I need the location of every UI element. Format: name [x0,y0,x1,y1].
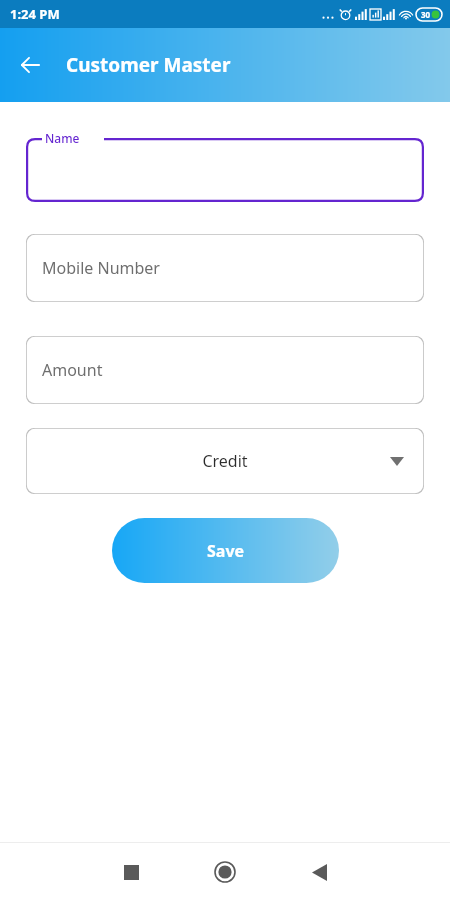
staticText: Credit [202,450,248,472]
button[interactable]: Back [8,43,52,87]
button[interactable]: Recent apps [104,845,158,899]
staticText: 1:24 PM [10,5,60,23]
button[interactable] [26,138,424,202]
button[interactable]: Back [292,845,346,899]
button[interactable]: Save [112,518,339,583]
staticText: Amount [42,359,103,381]
staticText: Name [45,130,80,146]
button[interactable]: Mobile Number [26,234,424,302]
staticText: Save [207,540,245,562]
button[interactable]: Amount [26,336,424,404]
staticText: Customer Master [66,52,231,78]
button[interactable]: Home [198,845,252,899]
button[interactable]: Credit [26,428,424,494]
staticText: Mobile Number [42,257,160,279]
staticText: 30 [421,9,431,20]
